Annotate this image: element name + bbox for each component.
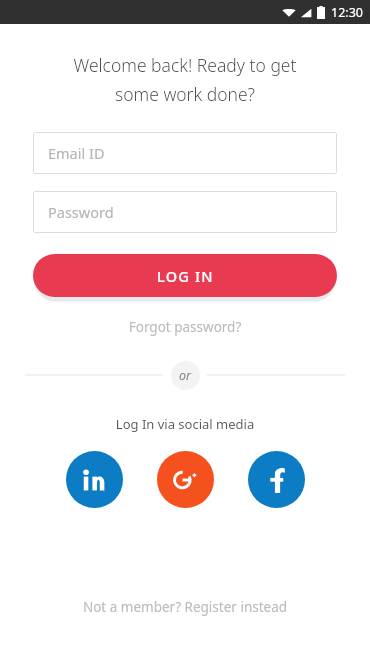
- button[interactable]: Email ID: [33, 132, 337, 174]
- staticText: Email ID: [48, 143, 105, 163]
- staticText: LOG IN: [157, 266, 214, 286]
- staticText: 12:30: [331, 4, 363, 21]
- button[interactable]: LinkedIn: [66, 451, 123, 508]
- staticText: or: [179, 367, 192, 384]
- button[interactable]: Forgot password?: [0, 314, 370, 340]
- button[interactable]: Google Plus: [157, 451, 214, 508]
- button[interactable]: Not a member? Register instead: [0, 592, 370, 622]
- staticText: Password: [48, 202, 114, 222]
- staticText: Log In via social media: [0, 415, 370, 433]
- button[interactable]: LOG IN: [33, 254, 337, 297]
- button[interactable]: Facebook: [248, 451, 305, 508]
- staticText: Welcome back! Ready to get some work don…: [24, 53, 346, 106]
- button[interactable]: Password: [33, 191, 337, 233]
